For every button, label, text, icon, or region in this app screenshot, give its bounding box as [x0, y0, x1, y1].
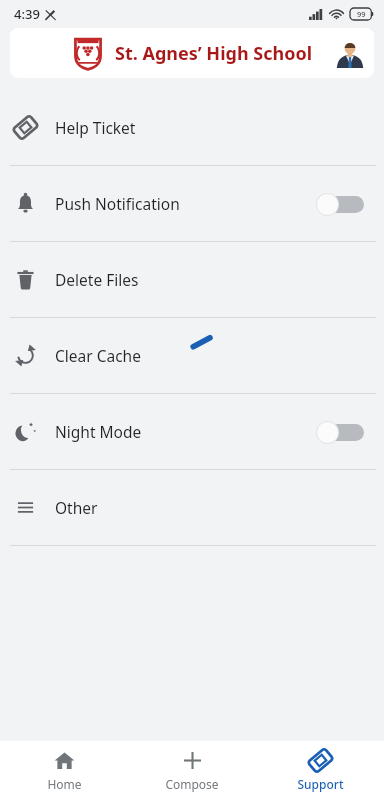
staticText: Push Notification [55, 193, 180, 214]
staticText: Help Ticket [55, 117, 136, 138]
staticText: Night Mode [55, 421, 142, 442]
button[interactable]: Night Mode [0, 394, 384, 469]
staticText: Compose [165, 776, 219, 792]
button[interactable]: St. Agnes’ High School [10, 28, 374, 78]
button[interactable]: Clear Cache [0, 318, 384, 393]
button[interactable]: Help Ticket [0, 90, 384, 165]
staticText: Other [55, 497, 98, 518]
button[interactable]: Profile [334, 37, 366, 69]
staticText: Home [47, 776, 82, 792]
staticText: Clear Cache [55, 345, 141, 366]
button[interactable]: Toggle [316, 190, 368, 218]
staticText: 99 [357, 9, 366, 19]
button[interactable]: Push Notification [0, 166, 384, 241]
button[interactable]: Support [256, 741, 384, 800]
button[interactable]: Home [0, 741, 128, 800]
staticText: St. Agnes’ High School [115, 41, 313, 66]
button[interactable]: Delete Files [0, 242, 384, 317]
staticText: Support [297, 776, 344, 792]
button[interactable]: Other [0, 470, 384, 545]
button[interactable]: Compose [128, 741, 256, 800]
staticText: 4:39 [14, 5, 40, 23]
staticText: Delete Files [55, 269, 139, 290]
button[interactable]: Toggle [316, 418, 368, 446]
